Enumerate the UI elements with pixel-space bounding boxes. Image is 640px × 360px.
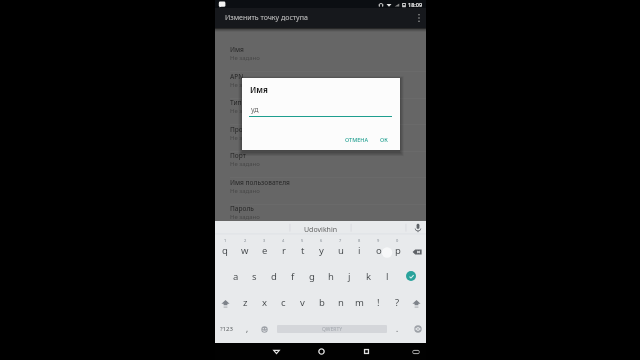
button[interactable]: x <box>255 291 274 317</box>
button[interactable]: ОТМЕНА <box>341 133 373 146</box>
button[interactable]: Порт <box>215 151 426 178</box>
button[interactable]: APN <box>215 72 426 99</box>
staticText: APN <box>230 72 244 81</box>
staticText: u <box>338 244 344 257</box>
button[interactable]: m <box>350 291 369 317</box>
button[interactable]: v <box>293 291 312 317</box>
staticText: , <box>246 323 249 334</box>
staticText: n <box>338 296 344 309</box>
staticText: 7 <box>339 238 342 243</box>
staticText: y <box>319 244 324 257</box>
button[interactable]: f <box>283 265 302 291</box>
staticText: b <box>319 296 325 309</box>
button[interactable]: Back <box>254 343 299 360</box>
staticText: v <box>300 296 305 309</box>
button[interactable]: s <box>245 265 264 291</box>
staticText: 1 <box>224 238 227 243</box>
staticText: Порт <box>230 151 246 160</box>
button[interactable]: ?123 <box>215 317 238 343</box>
staticText: ?123 <box>220 325 233 333</box>
button[interactable]: z <box>235 291 255 317</box>
staticText: m <box>355 296 364 309</box>
button[interactable]: Recents <box>344 343 389 360</box>
button[interactable]: d <box>264 265 283 291</box>
button[interactable]: Прокси-сервер <box>215 125 426 152</box>
button[interactable]: , <box>238 317 256 343</box>
button[interactable]: 9 <box>369 239 388 265</box>
staticText: Не задано <box>230 213 260 221</box>
staticText: Имя <box>230 45 244 54</box>
button[interactable]: n <box>331 291 350 317</box>
staticText: l <box>386 270 389 283</box>
button[interactable]: Hide keyboard <box>405 343 426 360</box>
staticText: g <box>309 270 315 283</box>
button[interactable]: l <box>378 265 397 291</box>
staticText: QWERTY <box>322 326 343 333</box>
button[interactable]: h <box>321 265 340 291</box>
staticText: t <box>301 244 305 257</box>
staticText: a <box>233 270 239 283</box>
button[interactable]: QWERTY <box>273 317 390 343</box>
staticText: Не задано <box>230 160 260 168</box>
staticText: Не задано <box>230 187 260 195</box>
staticText: 9 <box>377 238 380 243</box>
staticText: i <box>358 244 361 257</box>
button[interactable]: g <box>302 265 321 291</box>
staticText: d <box>271 270 277 283</box>
staticText: Имя <box>250 84 268 95</box>
button[interactable]: 1 <box>215 239 235 265</box>
staticText: o <box>376 244 382 257</box>
button[interactable]: Тип аутентификации <box>215 98 426 125</box>
button[interactable]: 5 <box>293 239 312 265</box>
button[interactable]: 8 <box>350 239 369 265</box>
button[interactable]: Shift <box>215 291 235 317</box>
staticText: . <box>396 323 399 334</box>
staticText: 18:09 <box>408 1 423 8</box>
button[interactable]: . <box>390 317 405 343</box>
staticText: 4 <box>282 238 285 243</box>
staticText: Имя пользователя <box>230 178 290 187</box>
button[interactable]: 4 <box>274 239 293 265</box>
staticText: Не задано <box>230 134 260 142</box>
button[interactable]: Имя пользователя <box>215 178 426 205</box>
button[interactable]: Voice input <box>410 221 426 234</box>
staticText: x <box>262 296 268 309</box>
button[interactable]: a <box>226 265 245 291</box>
staticText: c <box>281 296 286 309</box>
button[interactable]: Backspace <box>407 239 426 265</box>
button[interactable]: ОК <box>376 133 392 146</box>
staticText: z <box>243 296 248 309</box>
button[interactable]: c <box>274 291 293 317</box>
button[interactable]: 7 <box>331 239 350 265</box>
staticText: Изменить точку доступа <box>225 13 308 23</box>
button[interactable]: Shift <box>407 291 426 317</box>
staticText: r <box>282 244 286 257</box>
button[interactable]: Имя <box>215 45 426 72</box>
button[interactable]: b <box>312 291 331 317</box>
staticText: q <box>222 244 228 257</box>
staticText: 2 <box>244 238 247 243</box>
button[interactable]: Switch language <box>405 317 426 343</box>
button[interactable]: 0 <box>388 239 407 265</box>
staticText: Udovikhin <box>304 225 338 235</box>
button[interactable]: 3 <box>255 239 274 265</box>
button[interactable]: Пароль <box>215 204 426 231</box>
button[interactable]: ? <box>388 291 407 317</box>
button[interactable]: 6 <box>312 239 331 265</box>
staticText: h <box>328 270 334 283</box>
button[interactable]: Emoji <box>256 317 273 343</box>
button[interactable]: j <box>340 265 359 291</box>
staticText: Тип аутентификации <box>230 98 297 107</box>
staticText: j <box>348 270 351 283</box>
button[interactable]: Home <box>299 343 344 360</box>
staticText: 8 <box>358 238 361 243</box>
button[interactable]: k <box>359 265 378 291</box>
staticText: s <box>252 270 257 283</box>
button[interactable]: 2 <box>235 239 255 265</box>
staticText: ? <box>395 296 400 309</box>
button[interactable]: Enter <box>397 265 416 291</box>
button[interactable]: ! <box>369 291 388 317</box>
staticText: 3 <box>263 238 266 243</box>
button[interactable]: More options <box>412 8 426 28</box>
staticText: e <box>262 244 268 257</box>
